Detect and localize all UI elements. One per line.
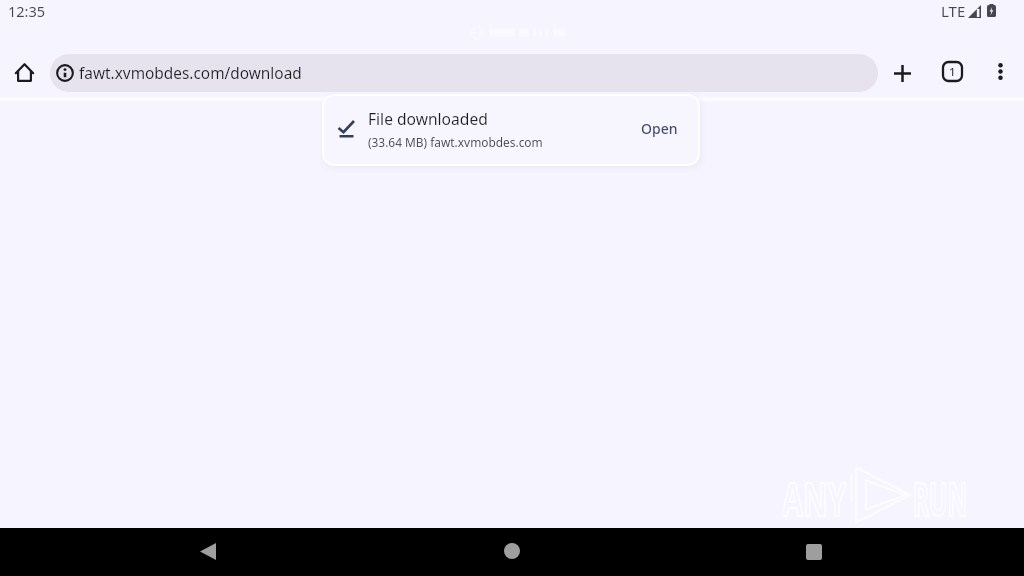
button[interactable]: fawt.xvmobdes.com/download <box>50 54 878 92</box>
staticText: 1 <box>949 64 956 80</box>
staticText: File downloaded <box>368 108 488 129</box>
button[interactable]: New tab <box>879 50 925 96</box>
button[interactable]: Tabs <box>929 48 975 94</box>
staticText: Open <box>641 119 678 138</box>
button[interactable]: Home <box>492 531 532 571</box>
staticText: LTE <box>941 1 966 21</box>
button[interactable]: Recent apps <box>794 532 834 572</box>
staticText: 12:35 <box>8 1 46 21</box>
staticText: (33.64 MB) fawt.xvmobdes.com <box>368 134 543 150</box>
button[interactable]: Home <box>1 49 47 95</box>
button[interactable]: Back <box>188 531 228 571</box>
staticText: fawt.xvmobdes.com/download <box>79 63 302 84</box>
button[interactable]: More options <box>977 48 1023 94</box>
button[interactable]: Open <box>633 112 686 145</box>
button[interactable]: File downloaded <box>322 94 700 166</box>
